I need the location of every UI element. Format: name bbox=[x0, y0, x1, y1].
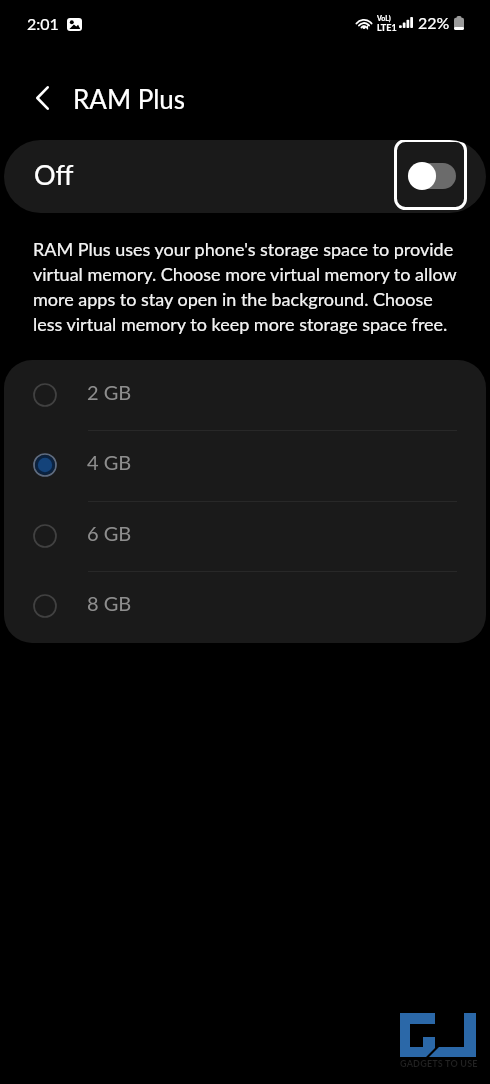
staticText: GADGETS TO USE bbox=[400, 1058, 478, 1069]
staticText: RAM Plus bbox=[73, 83, 186, 114]
button[interactable]: Off bbox=[4, 140, 486, 213]
staticText: LTE1 bbox=[377, 22, 397, 33]
button[interactable]: 8 GB bbox=[4, 570, 486, 641]
staticText: 4 GB bbox=[87, 450, 132, 474]
button[interactable]: 4 GB bbox=[4, 429, 486, 500]
staticText: Off bbox=[34, 158, 74, 190]
staticText: VoL) bbox=[377, 14, 391, 22]
staticText: 6 GB bbox=[87, 521, 132, 545]
staticText: 22% bbox=[418, 13, 450, 32]
button[interactable]: 6 GB bbox=[4, 500, 486, 571]
staticText: 8 GB bbox=[87, 591, 132, 615]
button[interactable]: 2 GB bbox=[4, 360, 486, 430]
staticText: 2:01 bbox=[27, 14, 59, 33]
button[interactable]: Navigate up bbox=[18, 74, 66, 122]
button[interactable]: RAM Plus on or off bbox=[394, 140, 467, 210]
staticText: RAM Plus uses your phone's storage space… bbox=[33, 238, 463, 334]
staticText: 2 GB bbox=[87, 380, 132, 404]
